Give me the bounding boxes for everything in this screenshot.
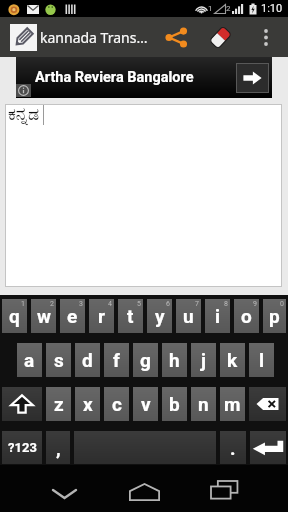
button[interactable]: f bbox=[104, 343, 129, 377]
staticText: n bbox=[198, 393, 209, 415]
staticText: 7 bbox=[195, 300, 199, 308]
staticText: d bbox=[82, 349, 93, 371]
staticText: 3 bbox=[79, 300, 83, 308]
button[interactable] bbox=[249, 387, 286, 421]
staticText: w bbox=[37, 305, 51, 327]
button[interactable]: ?123 bbox=[2, 431, 42, 464]
staticText: f bbox=[113, 349, 120, 371]
button[interactable]: r bbox=[89, 299, 114, 333]
staticText: y bbox=[155, 305, 165, 327]
button[interactable]: More options bbox=[252, 17, 280, 57]
staticText: h bbox=[169, 349, 180, 371]
button[interactable]: g bbox=[133, 343, 158, 377]
staticText: ?123 bbox=[8, 440, 37, 455]
button[interactable]: l bbox=[249, 343, 274, 377]
staticText: g bbox=[140, 349, 151, 371]
button[interactable]: w bbox=[31, 299, 56, 333]
button[interactable]: Recent apps bbox=[184, 465, 264, 512]
staticText: r bbox=[98, 305, 105, 327]
button[interactable]: . bbox=[220, 431, 246, 464]
staticText: 6 bbox=[166, 300, 170, 308]
staticText: e bbox=[67, 305, 78, 327]
staticText: . bbox=[230, 437, 236, 459]
staticText: c bbox=[112, 393, 122, 415]
staticText: b bbox=[169, 393, 180, 415]
button[interactable]: z bbox=[46, 387, 71, 421]
staticText: v bbox=[141, 393, 151, 415]
staticText: , bbox=[56, 437, 61, 459]
staticText: p bbox=[269, 305, 280, 327]
button[interactable] bbox=[2, 387, 42, 421]
staticText: 1 bbox=[208, 4, 213, 13]
staticText: 2 bbox=[226, 4, 231, 13]
button[interactable]: a bbox=[17, 343, 42, 377]
button[interactable]: Share bbox=[158, 17, 198, 57]
staticText: o bbox=[241, 305, 252, 327]
staticText: x bbox=[83, 393, 93, 415]
button[interactable]: Clear text bbox=[203, 17, 237, 57]
staticText: 0 bbox=[280, 300, 284, 308]
button[interactable]: Hide keyboard bbox=[24, 465, 104, 512]
button[interactable]: x bbox=[75, 387, 100, 421]
button[interactable]: p bbox=[263, 299, 286, 333]
button[interactable]: n bbox=[191, 387, 216, 421]
staticText: 2 bbox=[50, 300, 54, 308]
staticText: 8 bbox=[224, 300, 228, 308]
staticText: l bbox=[259, 349, 265, 371]
button[interactable]: q bbox=[2, 299, 27, 333]
button[interactable]: e bbox=[60, 299, 85, 333]
staticText: 4 bbox=[108, 300, 112, 308]
staticText: 1 bbox=[21, 300, 25, 308]
staticText: ಕನ್ನಡ bbox=[8, 106, 40, 124]
staticText: q bbox=[9, 305, 20, 327]
staticText: z bbox=[54, 393, 64, 415]
button[interactable]: Home bbox=[104, 465, 184, 512]
button[interactable]: b bbox=[162, 387, 187, 421]
staticText: j bbox=[201, 349, 206, 371]
staticText: a bbox=[24, 349, 35, 371]
button[interactable]: Open ad bbox=[236, 63, 269, 93]
button[interactable] bbox=[250, 431, 286, 464]
button[interactable]: u bbox=[176, 299, 201, 333]
button[interactable]: c bbox=[104, 387, 129, 421]
button[interactable]: i bbox=[205, 299, 230, 333]
staticText: i bbox=[215, 305, 221, 327]
button[interactable]: v bbox=[133, 387, 158, 421]
staticText: Artha Reviera Bangalore bbox=[35, 69, 194, 86]
staticText: 9 bbox=[253, 300, 257, 308]
button[interactable]: Artha Reviera Bangalore bbox=[16, 57, 272, 98]
button[interactable]: s bbox=[46, 343, 71, 377]
staticText: 5 bbox=[137, 300, 141, 308]
staticText: t bbox=[127, 305, 134, 327]
staticText: kannada Trans… bbox=[40, 28, 148, 47]
button[interactable]: k bbox=[220, 343, 245, 377]
button[interactable]: o bbox=[234, 299, 259, 333]
button[interactable]: ಕನ್ನಡ bbox=[5, 104, 282, 287]
button[interactable]: h bbox=[162, 343, 187, 377]
button[interactable]: Ad info bbox=[16, 84, 31, 97]
staticText: 1:10 bbox=[261, 2, 283, 15]
staticText: u bbox=[183, 305, 194, 327]
button[interactable]: y bbox=[147, 299, 172, 333]
staticText: s bbox=[54, 349, 64, 371]
button[interactable]: m bbox=[220, 387, 245, 421]
button[interactable]: d bbox=[75, 343, 100, 377]
button[interactable]: j bbox=[191, 343, 216, 377]
button[interactable] bbox=[74, 431, 216, 464]
button[interactable]: , bbox=[46, 431, 70, 464]
button[interactable]: t bbox=[118, 299, 143, 333]
staticText: k bbox=[227, 349, 238, 371]
staticText: m bbox=[224, 393, 241, 415]
